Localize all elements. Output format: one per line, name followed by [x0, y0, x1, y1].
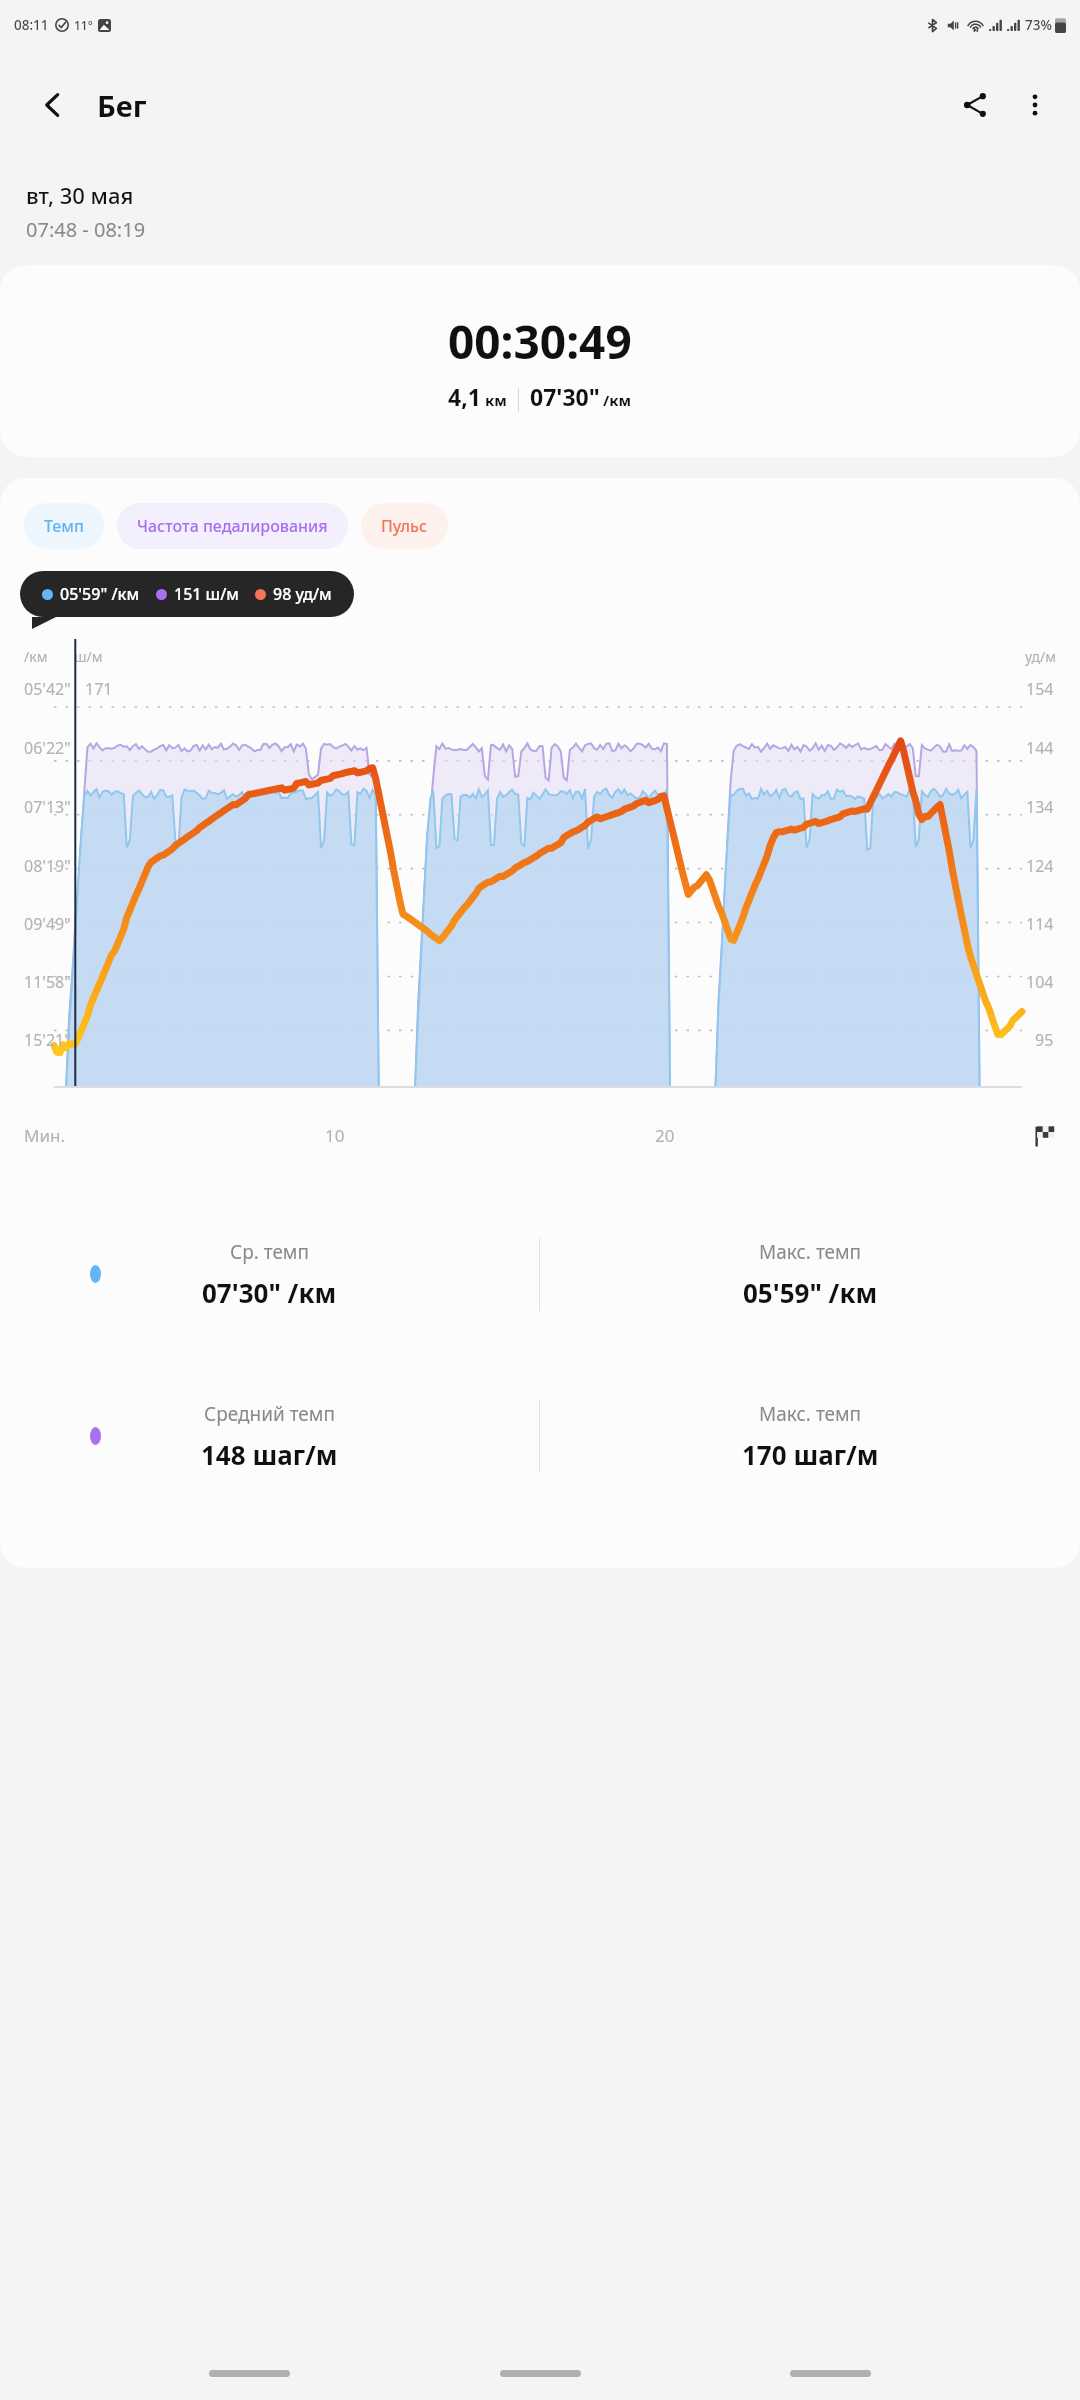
staticText: 154 — [1026, 678, 1054, 700]
staticText: Мин. — [24, 1124, 65, 1147]
staticText: 08:11 — [14, 16, 49, 34]
staticText: Средний темп — [204, 1401, 335, 1427]
staticText: 171 — [85, 678, 113, 700]
staticText: /км — [24, 647, 48, 666]
button[interactable]: Back — [26, 78, 80, 132]
staticText: /км — [603, 390, 632, 410]
button[interactable]: Navigation — [790, 2360, 871, 2386]
staticText: 05'59" /км — [743, 1275, 878, 1310]
staticText: 4,1 — [448, 381, 481, 412]
button[interactable]: Share — [948, 78, 1002, 132]
staticText: 00:30:49 — [448, 310, 632, 373]
staticText: 08'19" — [24, 855, 71, 877]
staticText: 07:48 - 08:19 — [26, 216, 146, 243]
staticText: 07'30" /км — [202, 1275, 337, 1310]
staticText: 20 — [655, 1124, 675, 1147]
staticText: 148 шаг/м — [201, 1437, 338, 1472]
staticText: Макс. темп — [759, 1239, 862, 1265]
staticText: уд/м — [1025, 647, 1056, 666]
staticText: Пульс — [381, 515, 428, 537]
button[interactable]: Navigation — [500, 2360, 581, 2386]
staticText: 10 — [325, 1124, 345, 1147]
staticText: 11'58" — [24, 971, 71, 993]
staticText: 07'30" — [530, 381, 600, 412]
button[interactable]: More options — [1008, 78, 1062, 132]
staticText: 170 шаг/м — [742, 1437, 879, 1472]
button[interactable]: Пульс — [361, 503, 448, 549]
button[interactable]: 00:30:49 — [0, 265, 1080, 457]
button[interactable]: Navigation — [209, 2360, 290, 2386]
staticText: Ср. темп — [230, 1239, 309, 1265]
staticText: 05'59" /км — [60, 583, 140, 605]
staticText: Темп — [44, 515, 84, 537]
staticText: вт, 30 мая — [26, 180, 134, 210]
staticText: 144 — [1026, 737, 1054, 759]
staticText: 07'13" — [24, 796, 71, 818]
staticText: 124 — [1026, 855, 1054, 877]
button[interactable]: Частота педалирования — [117, 503, 348, 549]
staticText: 06'22" — [24, 737, 71, 759]
staticText: 11° — [74, 17, 93, 33]
staticText: 114 — [1026, 913, 1054, 935]
staticText: 09'49" — [24, 913, 71, 935]
staticText: Частота педалирования — [137, 515, 328, 537]
staticText: ш/м — [74, 647, 103, 666]
staticText: 134 — [1026, 796, 1054, 818]
staticText: 95 — [1035, 1029, 1054, 1051]
staticText: км — [485, 390, 507, 410]
staticText: 151 ш/м — [174, 583, 239, 605]
staticText: 98 уд/м — [273, 583, 332, 605]
button[interactable]: Темп — [24, 503, 104, 549]
staticText: Макс. темп — [759, 1401, 862, 1427]
staticText: Бег — [97, 86, 147, 125]
staticText: 15'21" — [24, 1029, 71, 1051]
staticText: 73% — [1025, 16, 1052, 34]
staticText: 05'42" — [24, 678, 71, 700]
staticText: 104 — [1026, 971, 1054, 993]
